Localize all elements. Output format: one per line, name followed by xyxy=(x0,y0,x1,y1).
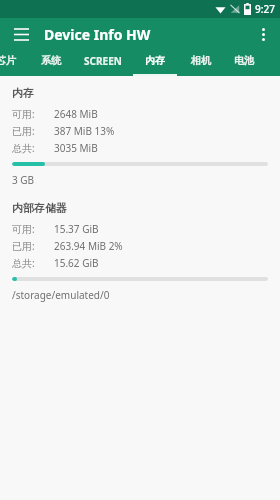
staticText: 可用: xyxy=(12,107,35,121)
button[interactable]: 内部存储器 xyxy=(0,201,280,302)
staticText: Device Info HW xyxy=(44,25,151,44)
staticText: 9:27 xyxy=(255,2,275,16)
staticText: 已用: xyxy=(12,239,35,253)
staticText: 芯片 xyxy=(0,54,16,67)
staticText: 电池 xyxy=(234,54,254,67)
button[interactable]: Open navigation drawer xyxy=(8,21,34,47)
staticText: 内部存储器 xyxy=(12,201,67,215)
staticText: 可用: xyxy=(12,222,35,236)
staticText: 3035 MiB xyxy=(54,141,98,155)
staticText: 内存 xyxy=(145,54,165,67)
staticText: 15.62 GiB xyxy=(54,256,99,270)
staticText: 相机 xyxy=(191,54,211,67)
staticText: 已用: xyxy=(12,124,35,138)
button[interactable]: SCREEN xyxy=(74,50,132,76)
button[interactable]: 电池 xyxy=(224,50,264,76)
button[interactable]: 相机 xyxy=(178,50,224,76)
staticText: /storage/emulated/0 xyxy=(12,288,110,302)
button[interactable]: More options xyxy=(250,21,276,47)
staticText: 3 GB xyxy=(12,173,35,187)
button[interactable]: 芯片 xyxy=(0,50,28,76)
staticText: 总共: xyxy=(12,141,35,155)
button[interactable]: 内存 xyxy=(132,50,178,76)
button[interactable]: 内存 xyxy=(0,86,280,187)
button[interactable]: 系统 xyxy=(28,50,74,76)
staticText: 15.37 GiB xyxy=(54,222,99,236)
staticText: SCREEN xyxy=(84,54,122,68)
staticText: 内存 xyxy=(12,86,34,100)
staticText: 总共: xyxy=(12,256,35,270)
staticText: 2648 MiB xyxy=(54,107,98,121)
staticText: 387 MiB 13% xyxy=(54,124,115,138)
staticText: 263.94 MiB 2% xyxy=(54,239,123,253)
staticText: 系统 xyxy=(41,54,61,67)
